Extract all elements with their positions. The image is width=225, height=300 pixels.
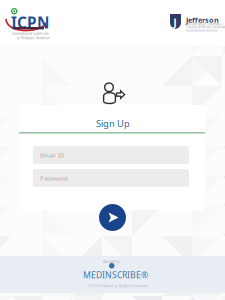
staticText: Jefferson	[186, 15, 219, 25]
staticText: Brought by	[103, 259, 120, 264]
staticText: ICPN	[11, 12, 49, 33]
staticText: International Certificate	[12, 31, 49, 36]
button[interactable]: Email ID	[33, 146, 189, 164]
staticText: © 2020 Powered by BioQuest Solutions.	[88, 284, 148, 288]
button[interactable]: Submit	[99, 204, 126, 231]
staticText: Philadelphia University +	[186, 22, 223, 26]
staticText: Email ID	[40, 151, 64, 159]
staticText: in Pediatric Nutrition	[17, 35, 50, 40]
button[interactable]: Password	[33, 169, 189, 187]
staticText: Password	[40, 174, 68, 182]
staticText: MEDINSCRIBE®	[83, 269, 148, 281]
staticText: J	[173, 15, 177, 29]
staticText: Thomas Jefferson University	[186, 25, 225, 29]
staticText: Sign Up	[96, 117, 130, 130]
